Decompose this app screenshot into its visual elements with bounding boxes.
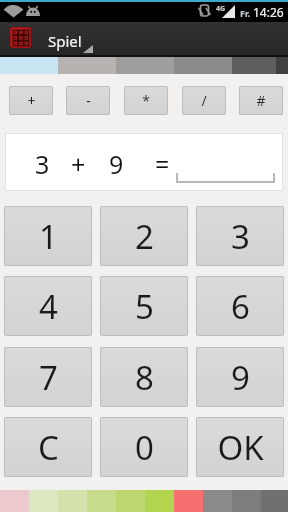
staticText: 0 (135, 425, 154, 470)
staticText: OK (217, 425, 264, 470)
staticText: Spiel (48, 31, 82, 51)
staticText: + (71, 147, 86, 181)
staticText: 14:26 (253, 4, 284, 20)
button[interactable]: 5 (100, 276, 188, 336)
staticText: C (38, 425, 59, 470)
button[interactable]: + (9, 86, 53, 115)
staticText: 8 (135, 355, 154, 400)
button[interactable]: 2 (100, 206, 188, 266)
button[interactable] (176, 173, 275, 183)
button[interactable]: 0 (100, 417, 188, 477)
staticText: 4G (216, 4, 226, 14)
staticText: 9 (109, 147, 124, 181)
staticText: 6 (231, 284, 250, 329)
button[interactable]: 1 (4, 206, 92, 266)
staticText: # (256, 91, 266, 110)
button[interactable]: / (182, 86, 226, 115)
staticText: 5 (135, 284, 154, 329)
staticText: * (142, 91, 150, 110)
staticText: + (27, 91, 36, 110)
button[interactable]: 7 (4, 347, 92, 407)
staticText: 7 (39, 355, 58, 400)
button[interactable] (232, 57, 288, 74)
staticText: Fr. (240, 7, 251, 19)
button[interactable]: * (124, 86, 168, 115)
staticText: 3 (231, 214, 250, 259)
button[interactable]: - (66, 86, 110, 115)
button[interactable]: C (4, 417, 92, 477)
button[interactable]: 6 (196, 276, 284, 336)
button[interactable]: 9 (196, 347, 284, 407)
button[interactable]: 4 (4, 276, 92, 336)
button[interactable]: Spiel (0, 22, 288, 57)
staticText: 2 (135, 214, 154, 259)
staticText: 9 (231, 355, 250, 400)
button[interactable]: 8 (100, 347, 188, 407)
staticText: 1 (39, 214, 58, 259)
staticText: 4 (39, 284, 58, 329)
staticText: 3 (35, 147, 50, 181)
staticText: = (155, 147, 170, 181)
button[interactable]: 3 (196, 206, 284, 266)
button[interactable]: OK (196, 417, 284, 477)
staticText: - (86, 91, 91, 110)
staticText: / (201, 91, 207, 110)
button[interactable]: # (239, 86, 283, 115)
